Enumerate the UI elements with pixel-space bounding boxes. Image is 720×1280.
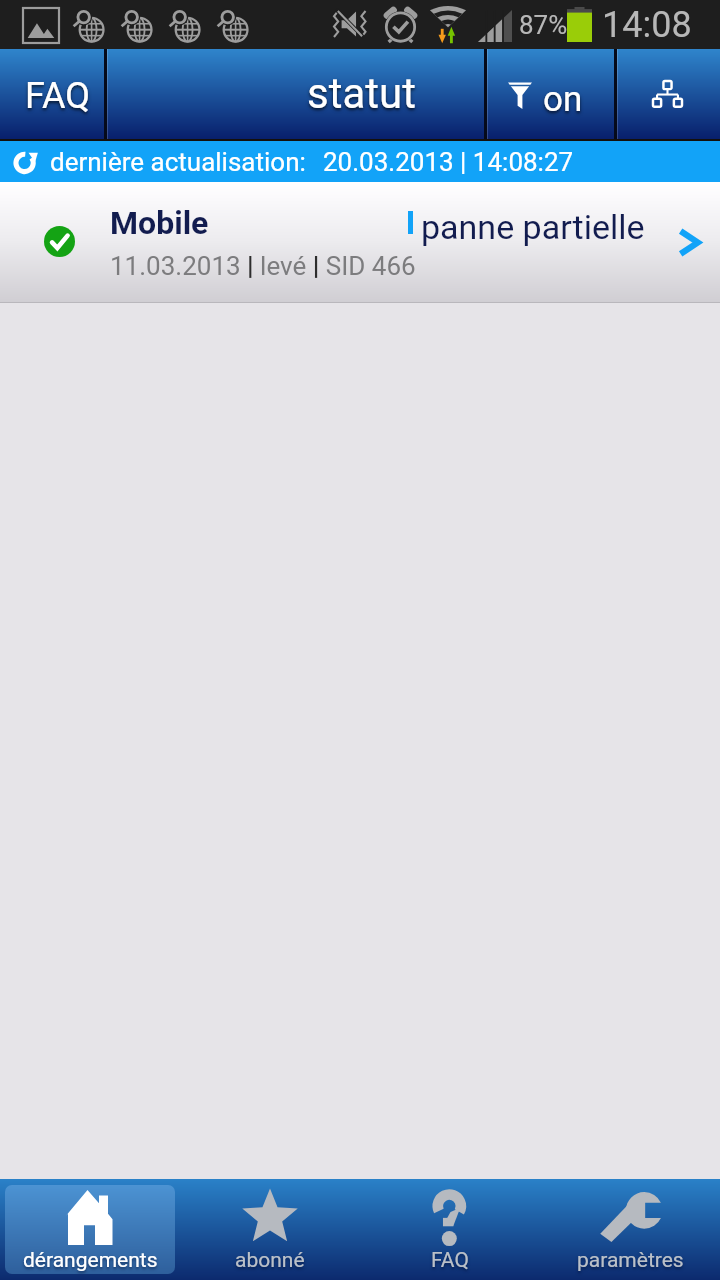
staticText: 87% [519,10,568,40]
staticText: 11.03.2013 | levé | SID 466 [110,251,416,281]
staticText: statut [307,69,416,118]
staticText: 20.03.2013 | 14:08:27 [323,147,574,177]
button[interactable]: abonné [185,1185,355,1274]
staticText: dérangements [23,1248,158,1273]
button[interactable] [0,49,105,139]
staticText: on [543,79,583,120]
staticText: 14:08 [602,4,692,46]
button[interactable]: FAQ [365,1185,535,1274]
button[interactable]: paramètres [545,1185,715,1274]
staticText: paramètres [577,1248,684,1273]
staticText: abonné [235,1248,305,1273]
staticText: dernière actualisation: [50,147,306,177]
staticText: Mobile [110,204,209,242]
button[interactable]: Mobile [0,182,720,302]
staticText: FAQ [25,75,90,117]
button[interactable]: Network hierarchy [615,49,720,139]
staticText: panne partielle [421,207,645,247]
staticText: FAQ [431,1248,469,1273]
button[interactable] [485,49,615,139]
button[interactable]: dérangements [5,1185,175,1274]
